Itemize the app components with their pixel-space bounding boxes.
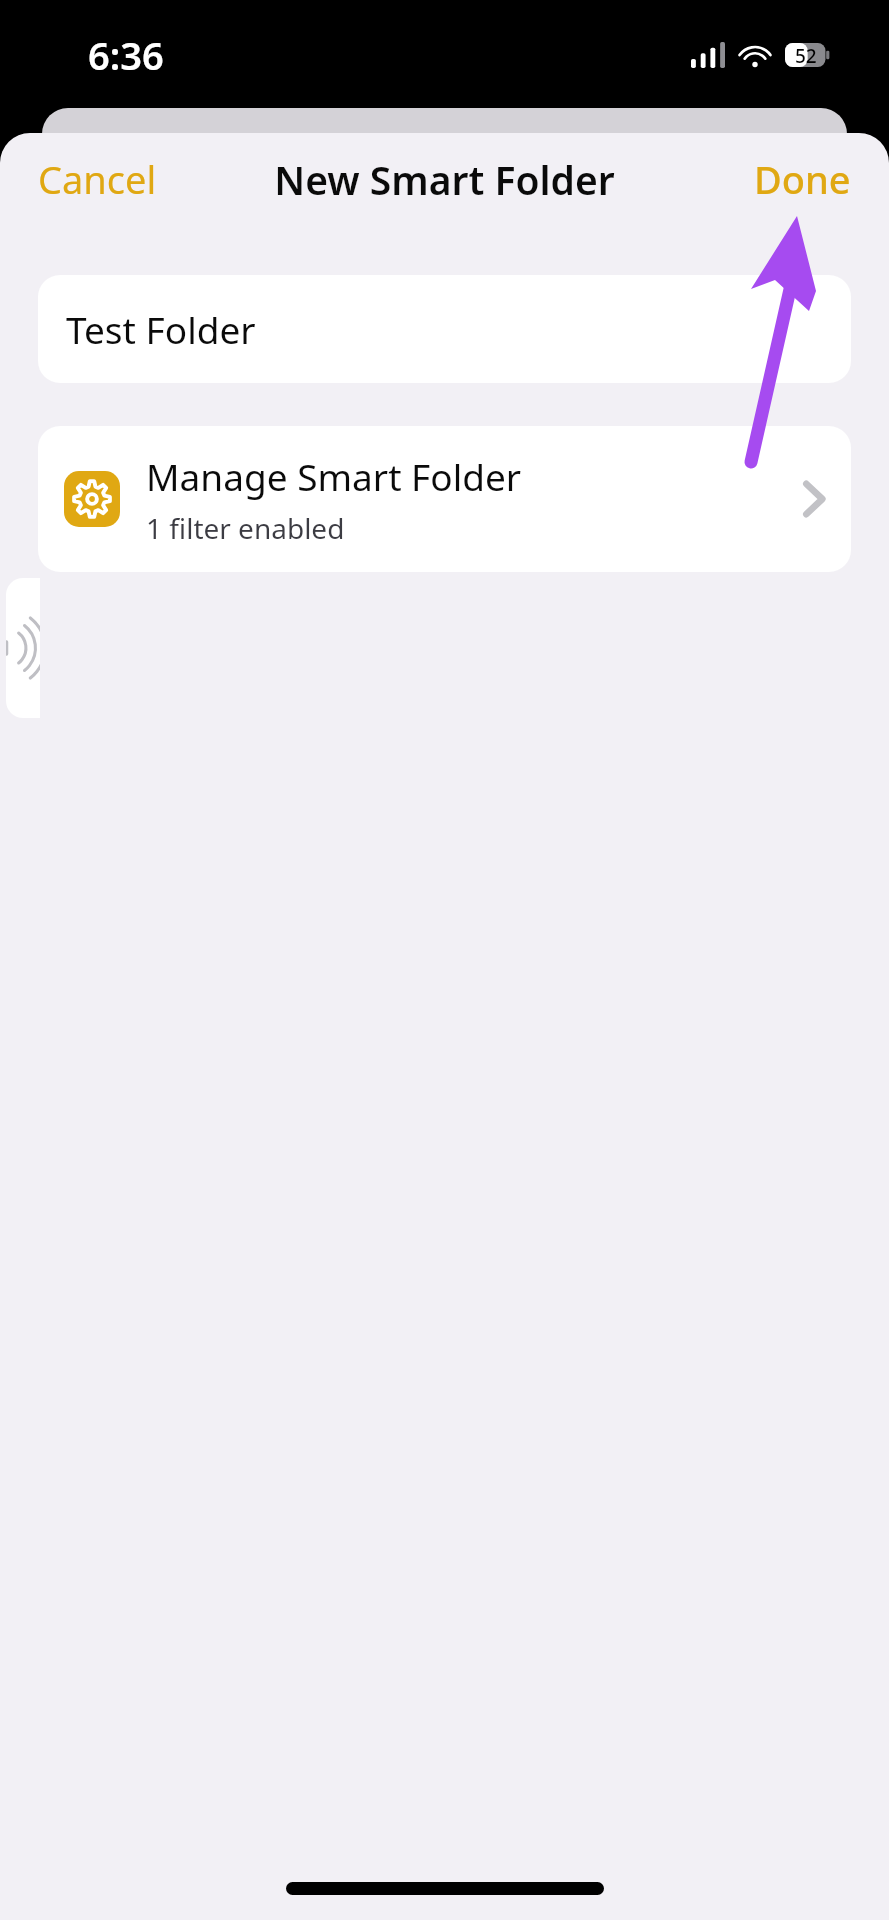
button[interactable]: Manage Smart Folder: [38, 426, 851, 572]
staticText: 52: [795, 43, 817, 67]
staticText: Done: [754, 153, 851, 205]
staticText: Cancel: [38, 153, 157, 205]
staticText: 6:36: [88, 29, 164, 81]
button[interactable]: Cancel: [0, 139, 177, 219]
staticText: 1 filter enabled: [146, 509, 345, 547]
staticText: New Smart Folder: [274, 153, 615, 206]
button[interactable]: Done: [734, 139, 889, 219]
staticText: Test Folder: [66, 304, 256, 354]
staticText: Manage Smart Folder: [146, 451, 522, 501]
button[interactable]: Test Folder: [38, 275, 851, 383]
other: Open: [803, 480, 825, 518]
